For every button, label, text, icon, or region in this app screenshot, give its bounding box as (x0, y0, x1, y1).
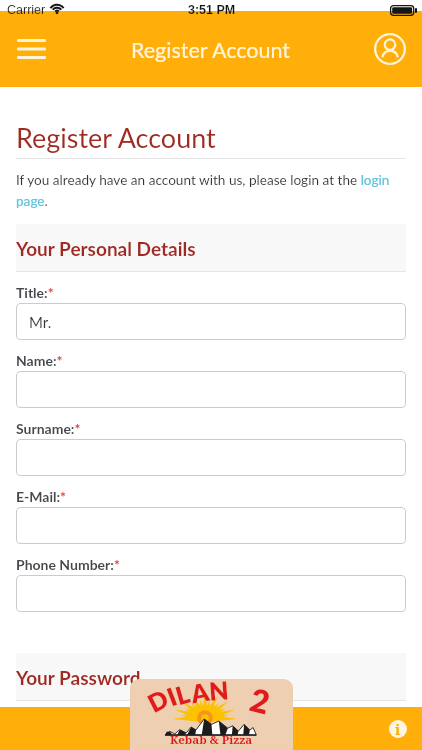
staticText: Phone Number:* (16, 556, 120, 573)
staticText: Register Account (16, 121, 216, 153)
staticText: Title:* (16, 284, 54, 301)
staticText: Your Password (16, 666, 141, 689)
staticText: i (395, 719, 401, 737)
button[interactable] (16, 439, 406, 476)
button[interactable] (16, 371, 406, 408)
button[interactable]: Open navigation menu (3, 26, 59, 72)
button[interactable] (16, 575, 406, 612)
staticText: If you already have an account with us, … (16, 172, 406, 209)
staticText: Your Personal Details (16, 237, 196, 260)
button[interactable]: Mr. (16, 303, 406, 340)
button[interactable] (16, 507, 406, 544)
button[interactable] (130, 679, 293, 750)
staticText: E-Mail:* (16, 488, 67, 505)
staticText: Surname:* (16, 420, 81, 437)
staticText: Register Account (131, 37, 291, 63)
staticText: 3:51 PM (188, 3, 236, 17)
button[interactable]: Account (368, 27, 412, 71)
button[interactable]: Information (382, 713, 414, 745)
staticText: Mr. (29, 313, 52, 331)
staticText: Carrier (7, 3, 46, 17)
staticText: Name:* (16, 352, 63, 369)
